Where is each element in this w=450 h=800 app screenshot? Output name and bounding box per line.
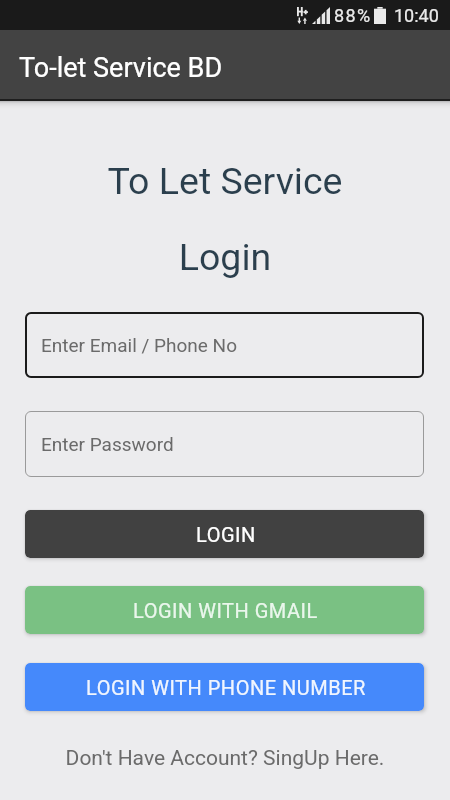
staticText: Enter Email / Phone No — [41, 334, 237, 356]
staticText: LOGIN WITH GMAIL — [133, 599, 318, 622]
button[interactable]: Enter Email / Phone No — [25, 312, 424, 378]
staticText: Login — [0, 235, 450, 279]
staticText: To-let Service BD — [19, 52, 223, 84]
staticText: To Let Service — [0, 159, 450, 203]
staticText: 10:40 — [394, 5, 439, 26]
button[interactable]: LOGIN — [25, 510, 424, 558]
button[interactable]: LOGIN WITH GMAIL — [25, 586, 424, 634]
other: Signal strength — [312, 7, 330, 24]
other: Battery — [374, 7, 386, 24]
staticText: 88% — [334, 5, 372, 26]
other: Mobile data H plus — [297, 7, 308, 24]
button[interactable]: LOGIN WITH PHONE NUMBER — [25, 663, 424, 711]
button[interactable]: Don't Have Account? SingUp Here. — [0, 735, 450, 769]
staticText: Don't Have Account? SingUp Here. — [0, 746, 450, 771]
staticText: Enter Password — [41, 433, 174, 455]
staticText: LOGIN WITH PHONE NUMBER — [86, 676, 366, 699]
staticText: LOGIN — [196, 523, 256, 546]
button[interactable]: Enter Password — [25, 411, 424, 477]
